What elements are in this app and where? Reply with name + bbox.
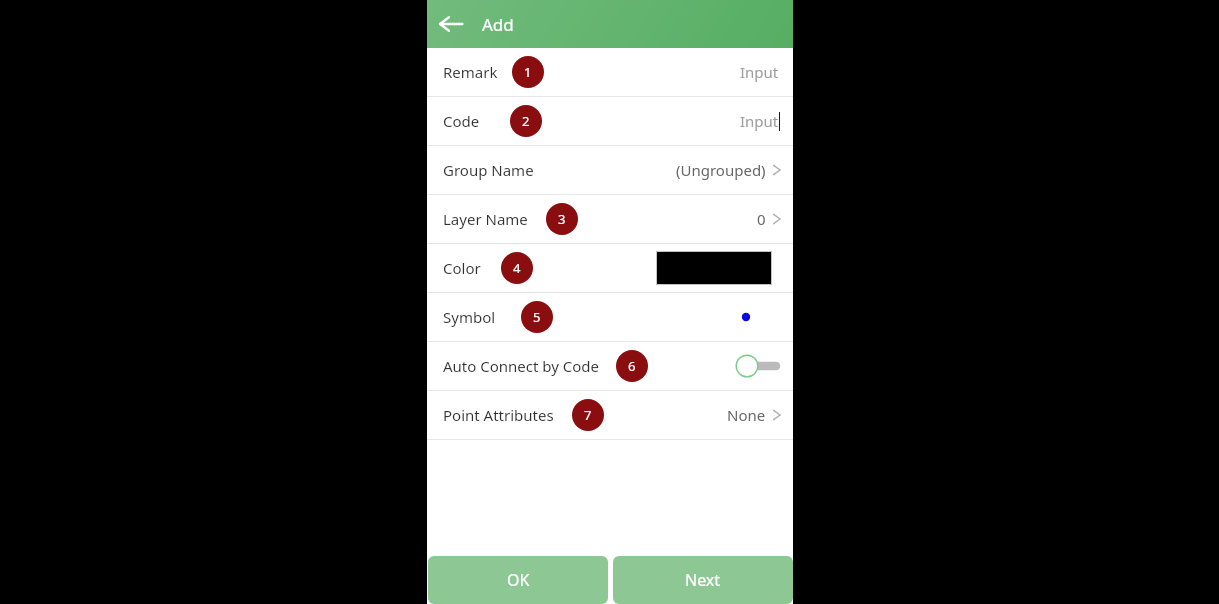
button[interactable]: Point Attributes: [427, 391, 793, 439]
staticText: 5: [533, 308, 541, 326]
staticText: Auto Connect by Code: [443, 356, 600, 376]
button[interactable]: Code: [427, 97, 793, 145]
staticText: Color: [443, 258, 481, 278]
staticText: Next: [685, 569, 721, 591]
staticText: Code: [443, 111, 480, 131]
staticText: 3: [558, 210, 566, 228]
staticText: 1: [524, 63, 532, 81]
button[interactable]: Layer Name: [427, 195, 793, 243]
staticText: Group Name: [443, 160, 534, 180]
staticText: (Ungrouped): [676, 160, 766, 180]
button[interactable]: Color: [427, 244, 793, 292]
button[interactable]: Group Name: [427, 146, 793, 194]
staticText: Add: [482, 13, 514, 36]
staticText: 2: [522, 112, 530, 130]
staticText: 6: [628, 357, 636, 375]
staticText: Input: [740, 62, 779, 82]
staticText: OK: [507, 569, 530, 591]
button[interactable]: Auto Connect by Code toggle: [735, 354, 781, 378]
staticText: 4: [513, 259, 521, 277]
staticText: Point Attributes: [443, 405, 554, 425]
button[interactable]: Auto Connect by Code: [427, 342, 793, 390]
button[interactable]: Back: [427, 0, 475, 48]
staticText: 7: [584, 406, 592, 424]
button[interactable]: Remark: [427, 48, 793, 96]
staticText: Layer Name: [443, 209, 528, 229]
button[interactable]: OK: [428, 556, 608, 604]
staticText: Remark: [443, 62, 498, 82]
staticText: Symbol: [443, 307, 496, 327]
staticText: Input: [740, 111, 779, 131]
button[interactable]: Next: [613, 556, 793, 604]
staticText: 0: [757, 209, 766, 229]
button[interactable]: Symbol: [427, 293, 793, 341]
staticText: None: [727, 405, 766, 425]
